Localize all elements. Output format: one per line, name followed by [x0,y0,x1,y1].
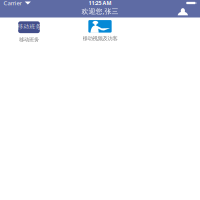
button[interactable]: 移动视频及访客 [78,20,122,42]
staticText: 移动班务 [19,36,39,43]
staticText: 欢迎您,张三 [81,6,118,16]
staticText: 移动班务 [17,22,41,30]
staticText: Carrier [3,0,21,7]
staticText: 11:25 AM [88,0,111,7]
button[interactable]: Account [177,7,189,16]
staticText: 移动视频及访客 [82,35,117,42]
button[interactable]: 移动班务 [7,21,51,43]
